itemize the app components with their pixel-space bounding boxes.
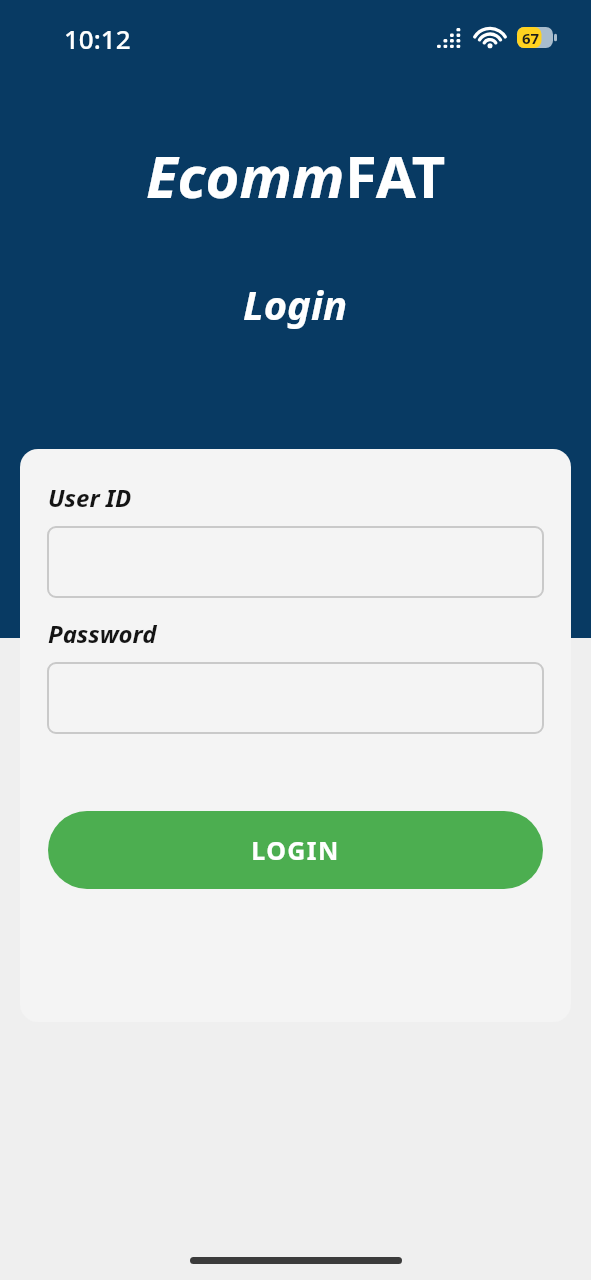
button[interactable]: User ID input	[48, 527, 543, 597]
button[interactable]: Password input	[48, 663, 543, 733]
staticText: 10:12	[64, 21, 131, 56]
staticText: Login	[243, 277, 348, 331]
staticText: User ID	[48, 481, 132, 514]
staticText: Ecomm	[146, 136, 345, 215]
staticText: 67	[522, 28, 540, 48]
button[interactable]: LOGIN	[48, 811, 543, 889]
staticText: FAT	[345, 136, 446, 215]
staticText: Password	[48, 617, 157, 650]
staticText: LOGIN	[251, 833, 340, 867]
